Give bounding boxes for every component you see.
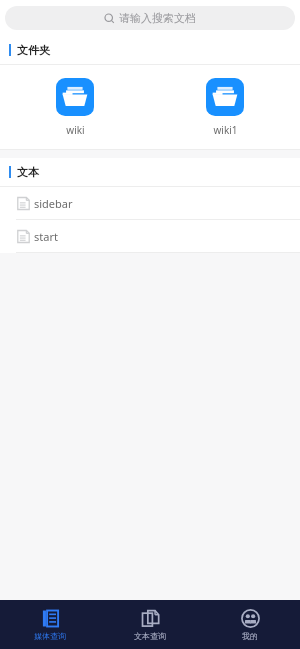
button[interactable]: wiki1 <box>150 65 300 149</box>
staticText: 我的 <box>242 631 258 641</box>
staticText: 媒体查询 <box>34 631 66 641</box>
staticText: wiki <box>66 123 85 137</box>
button[interactable]: sidebar <box>0 187 300 219</box>
staticText: wiki1 <box>213 123 238 137</box>
button[interactable]: start <box>0 220 300 252</box>
button[interactable]: 我的 <box>200 600 300 649</box>
button[interactable]: 请输入搜索文档 <box>5 6 295 30</box>
staticText: start <box>34 229 58 244</box>
staticText: 请输入搜索文档 <box>119 11 196 25</box>
staticText: 文件夹 <box>17 43 50 57</box>
button[interactable]: wiki <box>0 65 150 149</box>
staticText: 文本 <box>17 165 39 179</box>
button[interactable]: 文本查询 <box>100 600 200 649</box>
button[interactable]: 媒体查询 <box>0 600 100 649</box>
staticText: 文本查询 <box>134 631 166 641</box>
staticText: sidebar <box>34 196 73 211</box>
